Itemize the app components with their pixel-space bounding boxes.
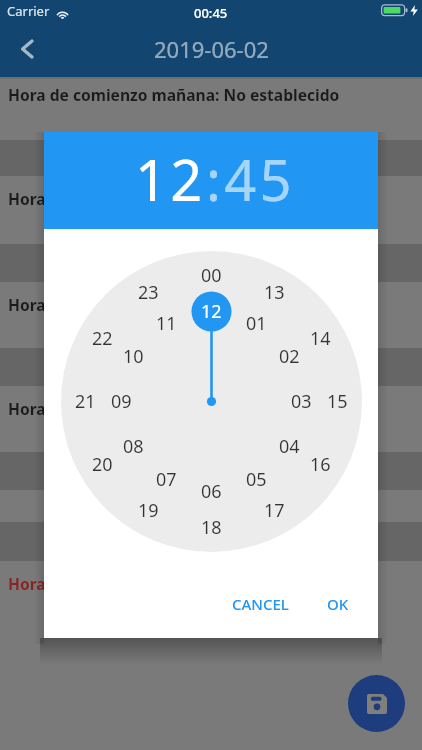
staticText: 17: [264, 498, 285, 523]
staticText: 02: [279, 344, 300, 369]
button[interactable]: [0, 561, 422, 750]
staticText: Hora de comienzo tarde: No establecido: [8, 294, 318, 315]
button[interactable]: [0, 244, 422, 282]
staticText: 00:45: [194, 4, 228, 22]
staticText: 12: [201, 299, 222, 324]
staticText: 09: [111, 389, 132, 414]
staticText: 10: [123, 344, 144, 369]
button[interactable]: [0, 452, 422, 490]
staticText: :45: [206, 141, 295, 217]
button[interactable]: [0, 348, 422, 386]
staticText: 12: [135, 141, 206, 217]
staticText: 00: [201, 263, 222, 288]
staticText: 07: [156, 467, 177, 492]
staticText: Horas totales: 0:00: [8, 573, 152, 594]
staticText: 05: [246, 467, 267, 492]
button[interactable]: Save: [348, 675, 405, 732]
staticText: Hora de fin tarde: No establecido: [8, 398, 265, 419]
staticText: 2019-06-02: [154, 34, 269, 64]
button[interactable]: [0, 176, 422, 244]
staticText: 08: [123, 434, 144, 459]
staticText: Carrier: [7, 2, 50, 20]
staticText: 16: [310, 452, 331, 477]
staticText: 13: [264, 280, 285, 305]
staticText: Hora de comienzo mañana: No establecido: [8, 84, 340, 105]
staticText: 11: [156, 311, 177, 336]
button[interactable]: Back: [8, 28, 50, 70]
button[interactable]: [0, 282, 422, 348]
staticText: 22: [92, 326, 113, 351]
staticText: Hora de fin mañana: No establecido: [8, 188, 286, 209]
button[interactable]: CANCEL: [220, 586, 301, 622]
staticText: OK: [327, 594, 349, 614]
staticText: 18: [201, 515, 222, 540]
staticText: 15: [327, 389, 348, 414]
staticText: 21: [75, 389, 96, 414]
staticText: 03: [291, 389, 312, 414]
button[interactable]: [0, 79, 422, 140]
button[interactable]: [0, 522, 422, 561]
button[interactable]: OK: [315, 586, 361, 622]
staticText: 20: [92, 452, 113, 477]
button[interactable]: [0, 140, 422, 176]
staticText: 01: [246, 311, 267, 336]
button[interactable]: [0, 490, 422, 522]
staticText: 14: [310, 326, 331, 351]
staticText: 04: [279, 434, 300, 459]
staticText: CANCEL: [232, 594, 289, 614]
staticText: 06: [201, 479, 222, 504]
button[interactable]: [0, 386, 422, 452]
staticText: 23: [138, 280, 159, 305]
staticText: 19: [138, 498, 159, 523]
